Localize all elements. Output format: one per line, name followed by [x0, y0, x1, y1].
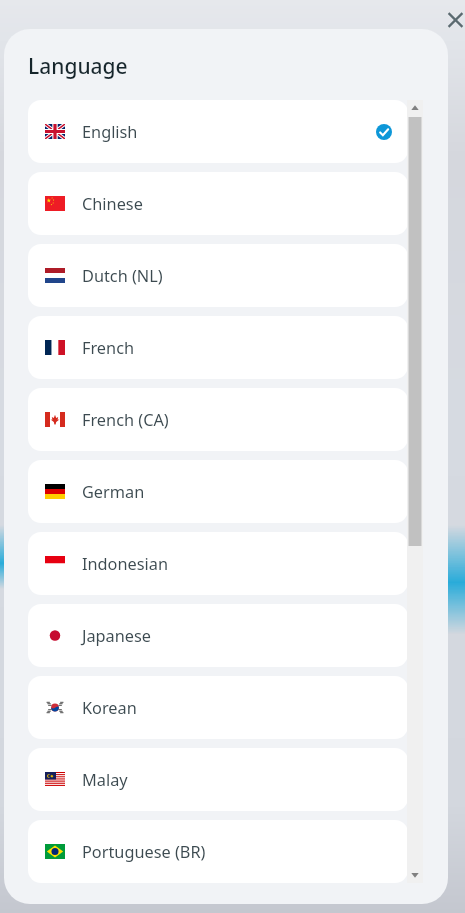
button[interactable]: Dutch (NL) — [28, 244, 408, 307]
staticText: Korean — [82, 697, 137, 719]
staticText: Malay — [82, 769, 128, 791]
staticText: French — [82, 337, 135, 359]
button[interactable]: Chinese — [28, 172, 408, 235]
button[interactable]: Indonesian — [28, 532, 408, 595]
staticText: French (CA) — [82, 409, 169, 431]
staticText: Dutch (NL) — [82, 265, 163, 287]
button[interactable]: French — [28, 316, 408, 379]
button[interactable]: Japanese — [28, 604, 408, 667]
button[interactable]: French (CA) — [28, 388, 408, 451]
button[interactable]: German — [28, 460, 408, 523]
button[interactable]: Malay — [28, 748, 408, 811]
staticText: Portuguese (BR) — [82, 841, 206, 863]
button[interactable]: Korean — [28, 676, 408, 739]
staticText: Chinese — [82, 193, 143, 215]
staticText: Indonesian — [82, 553, 168, 575]
staticText: German — [82, 481, 145, 503]
staticText: Japanese — [82, 625, 152, 647]
staticText: Language — [28, 52, 128, 81]
button[interactable]: Close — [441, 6, 465, 35]
staticText: English — [82, 121, 138, 143]
button[interactable]: English — [28, 100, 408, 163]
button[interactable]: Portuguese (BR) — [28, 820, 408, 883]
